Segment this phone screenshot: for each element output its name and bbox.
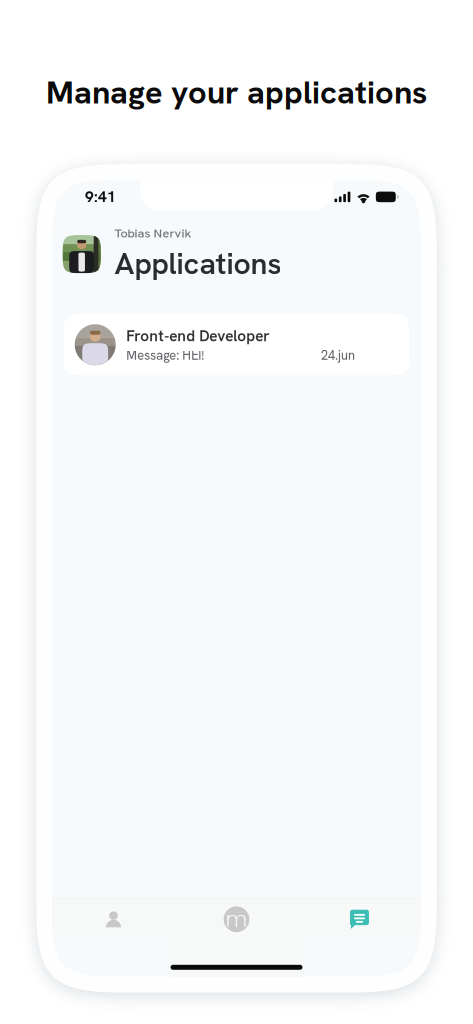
staticText: Applications [114, 244, 281, 283]
button[interactable]: Home [175, 899, 298, 940]
staticText: Message: HEI! [126, 347, 204, 364]
button[interactable]: Front-end Developer [64, 314, 409, 375]
staticText: Tobias Nervik [114, 225, 191, 241]
button[interactable]: Messages [298, 899, 421, 940]
staticText: Front-end Developer [126, 326, 269, 346]
staticText: m [225, 904, 247, 934]
staticText: 9:41 [85, 187, 116, 207]
button[interactable]: Profile [52, 899, 175, 940]
staticText: 24.jun [321, 347, 355, 364]
staticText: Manage your applications [46, 71, 427, 113]
